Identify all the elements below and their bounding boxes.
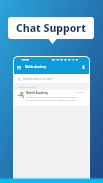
button[interactable]: Open navigation menu — [17, 66, 21, 69]
staticText: Recently viewed — [18, 85, 36, 88]
button[interactable]: Search course or tutor — [14, 74, 89, 83]
staticText: 17 June — [76, 91, 84, 94]
button[interactable]: Chat Support — [8, 17, 94, 39]
staticText: Lorem ipsum dolor sit amet, consectetur … — [26, 96, 77, 99]
staticText: Chat Support — [16, 21, 86, 35]
staticText: elit, sed do eiusmod tempor incididunt u… — [26, 99, 76, 102]
staticText: Search course or tutor — [23, 77, 53, 81]
button[interactable]: Account — [82, 65, 85, 69]
staticText: Mobile Academy — [26, 91, 49, 95]
button[interactable]: Mobile Academy — [14, 90, 89, 106]
staticText: Mobile Academy — [25, 65, 47, 69]
